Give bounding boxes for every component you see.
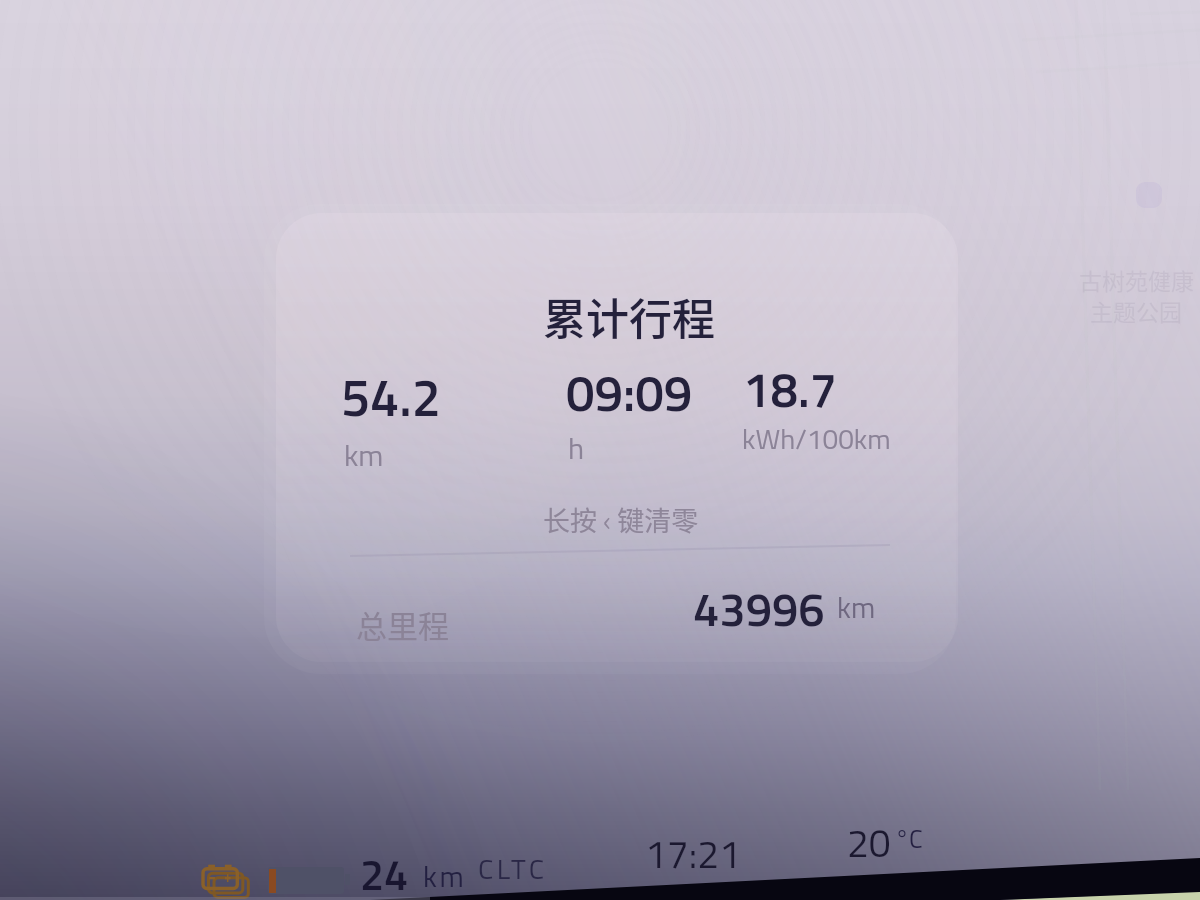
staticText: km <box>837 585 876 629</box>
staticText: °C <box>895 820 923 858</box>
button[interactable] <box>274 213 940 662</box>
staticText: 长按 ‹ 键清零 <box>543 500 699 539</box>
staticText: 20 <box>847 813 891 872</box>
staticText: km <box>423 854 467 898</box>
staticText: h <box>568 425 585 471</box>
staticText: 18.7 <box>743 351 838 426</box>
staticText: 43996 <box>693 573 825 644</box>
staticText: 主题公园 <box>1090 294 1182 327</box>
staticText: CLTC <box>478 847 548 890</box>
staticText: 54.2 <box>341 357 441 436</box>
staticText: 17:21 <box>645 824 741 883</box>
staticText: 总里程 <box>356 602 449 647</box>
other: 12V battery status <box>203 864 255 898</box>
staticText: 累计行程 <box>543 285 715 347</box>
staticText: 24 <box>360 841 409 900</box>
staticText: 09:09 <box>566 353 693 431</box>
staticText: kWh/100km <box>742 417 891 460</box>
staticText: 古树苑健康 <box>1079 263 1194 296</box>
staticText: km <box>344 432 384 478</box>
